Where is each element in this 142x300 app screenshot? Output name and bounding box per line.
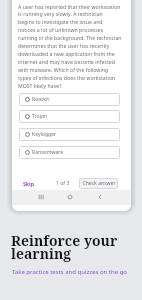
button[interactable]: Check answer: [79, 178, 118, 189]
button[interactable]: Trojan: [19, 110, 120, 123]
button[interactable]: Recents: [35, 191, 47, 203]
button[interactable]: Home: [64, 191, 76, 203]
button[interactable]: Rootkit: [19, 93, 120, 106]
button[interactable]: Back: [94, 191, 106, 203]
staticText: Ransomware: [32, 149, 64, 156]
staticText: Trojan: [32, 113, 47, 120]
button[interactable]: Ransomware: [19, 146, 120, 159]
button[interactable]: Skip: [21, 178, 36, 189]
staticText: Take practice tests and quizzes on the g…: [12, 268, 127, 276]
staticText: Keylogger: [32, 131, 57, 138]
button[interactable]: Keylogger: [19, 128, 120, 141]
staticText: Skip: [23, 180, 34, 187]
staticText: Rootkit: [32, 96, 50, 103]
staticText: A user has reported that their workstati…: [18, 3, 122, 90]
staticText: Reinforce your learning: [11, 231, 118, 263]
staticText: Check answer: [82, 180, 116, 187]
staticText: 1 of 3: [56, 180, 70, 187]
